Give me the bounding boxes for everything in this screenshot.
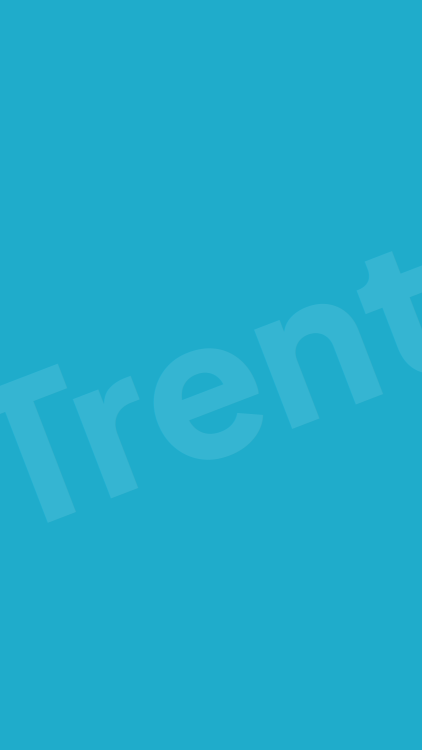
staticText: Trent [0, 252, 422, 498]
